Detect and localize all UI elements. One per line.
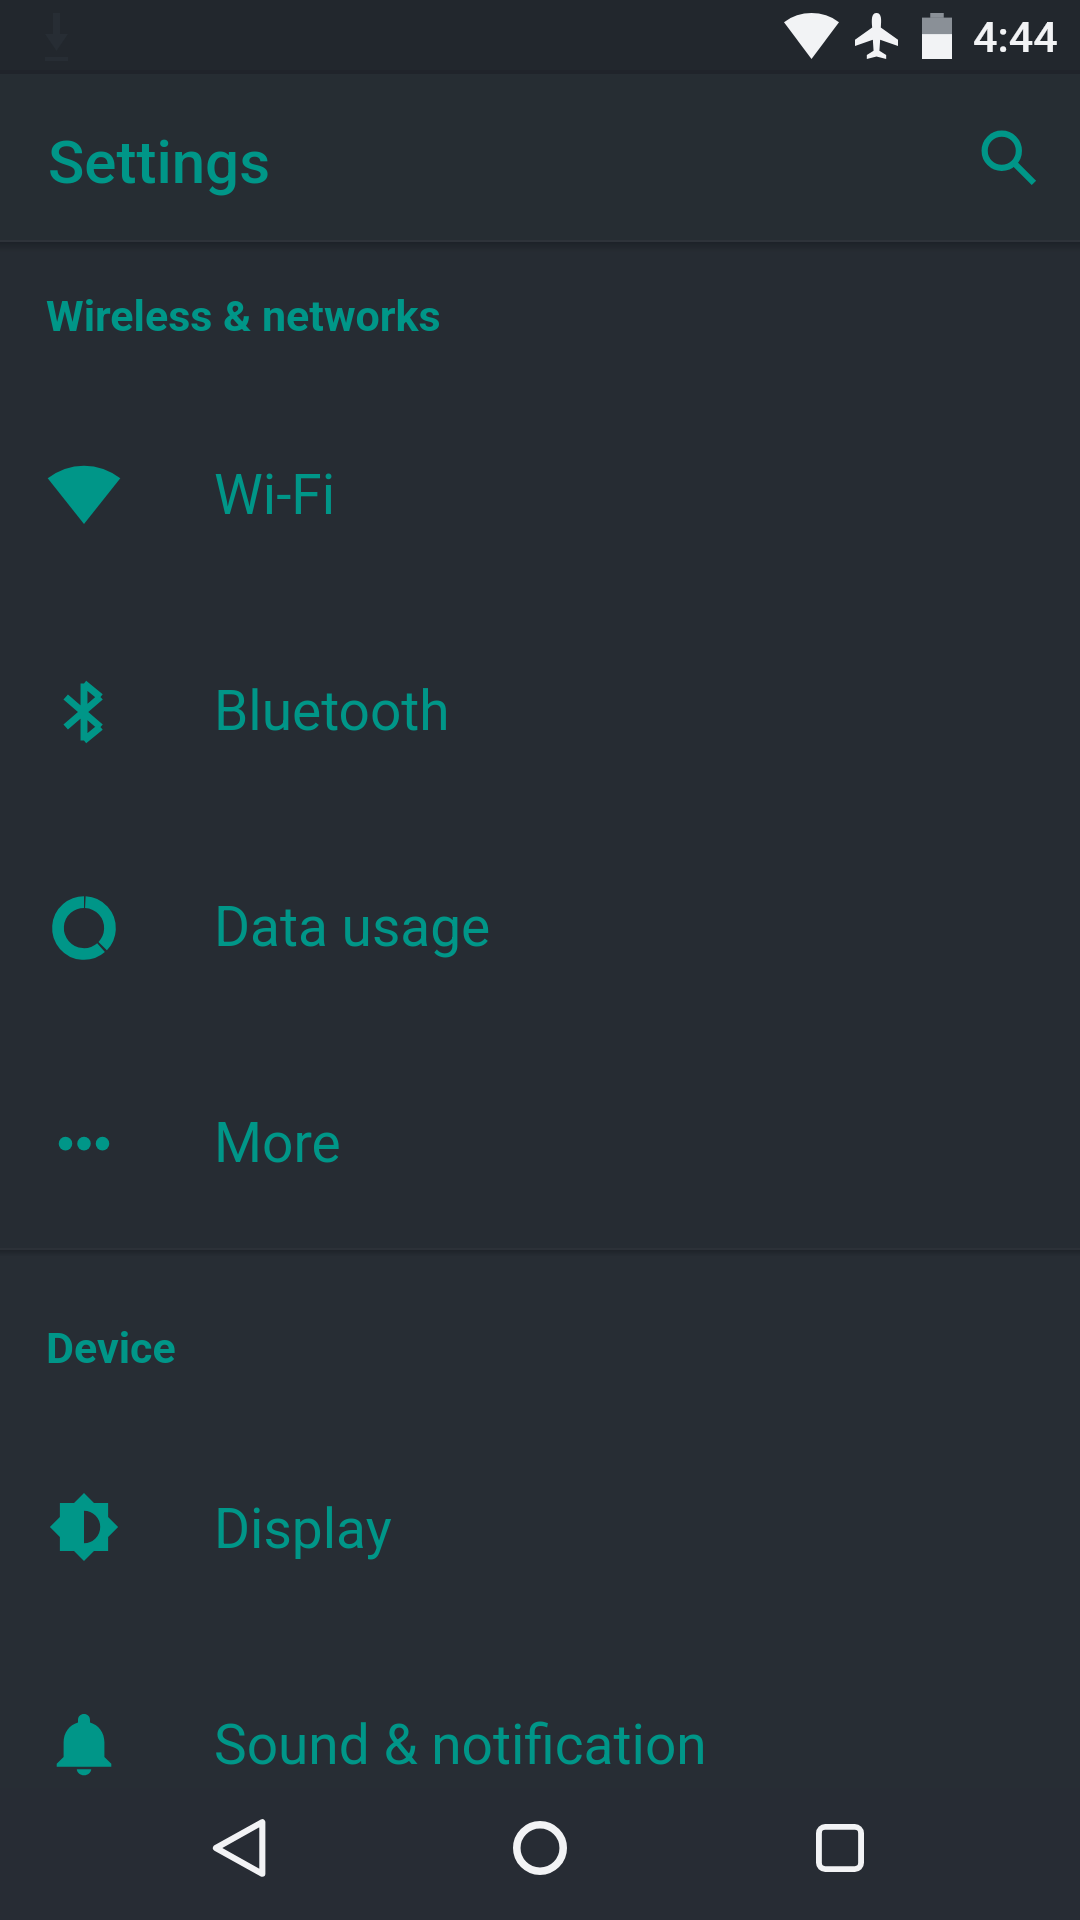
button[interactable]: Home [485, 1793, 595, 1903]
staticText: Bluetooth [214, 679, 450, 743]
button[interactable]: More [0, 1035, 1080, 1252]
button[interactable]: Bluetooth [0, 603, 1080, 820]
button[interactable]: Display [0, 1418, 1080, 1635]
staticText: 4:44 [973, 12, 1058, 62]
button[interactable]: Search [952, 102, 1064, 214]
staticText: Sound & notification [214, 1713, 707, 1777]
staticText: Display [214, 1497, 392, 1561]
button[interactable]: Recents [785, 1793, 895, 1903]
staticText: Device [46, 1323, 176, 1373]
button[interactable]: Back [185, 1793, 295, 1903]
button[interactable]: Data usage [0, 819, 1080, 1036]
staticText: Data usage [214, 895, 491, 959]
button[interactable]: Wi-Fi [0, 387, 1080, 604]
staticText: Wireless & networks [46, 291, 441, 341]
staticText: More [214, 1111, 341, 1175]
button[interactable]: Sound & notification [0, 1635, 1080, 1852]
staticText: Settings [48, 127, 271, 197]
staticText: Wi-Fi [214, 463, 336, 527]
